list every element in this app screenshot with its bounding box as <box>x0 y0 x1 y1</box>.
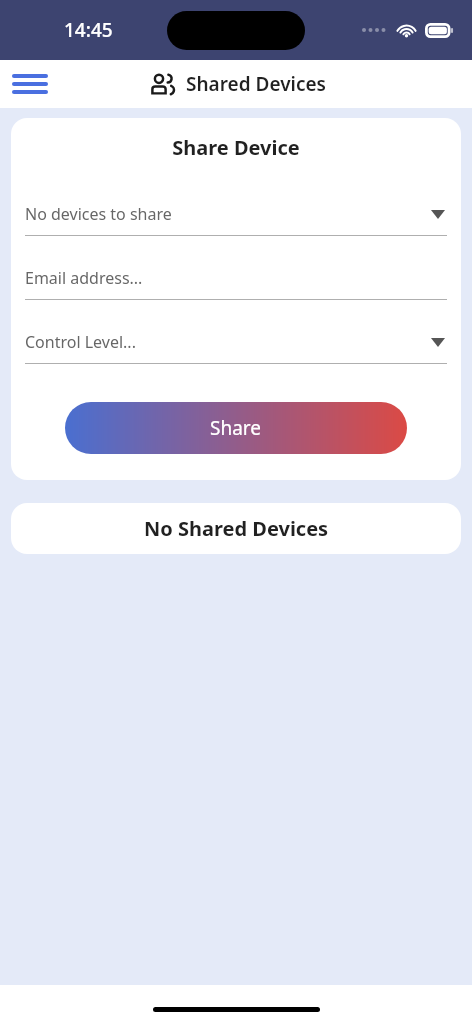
button[interactable]: Control Level... <box>25 331 447 364</box>
staticText: No Shared Devices <box>144 515 329 542</box>
staticText: Email address... <box>25 267 447 289</box>
staticText: Control Level... <box>25 331 431 353</box>
button[interactable]: Share <box>65 402 407 454</box>
staticText: Shared Devices <box>186 71 326 97</box>
button[interactable]: Open navigation menu <box>8 62 52 106</box>
staticText: 14:45 <box>64 17 113 43</box>
staticText: Share <box>210 415 262 441</box>
button[interactable]: No devices to share <box>25 203 447 236</box>
button[interactable]: Email address... <box>25 267 447 300</box>
staticText: No devices to share <box>25 203 431 225</box>
staticText: Share Device <box>11 134 461 161</box>
button[interactable]: No Shared Devices <box>11 503 461 554</box>
